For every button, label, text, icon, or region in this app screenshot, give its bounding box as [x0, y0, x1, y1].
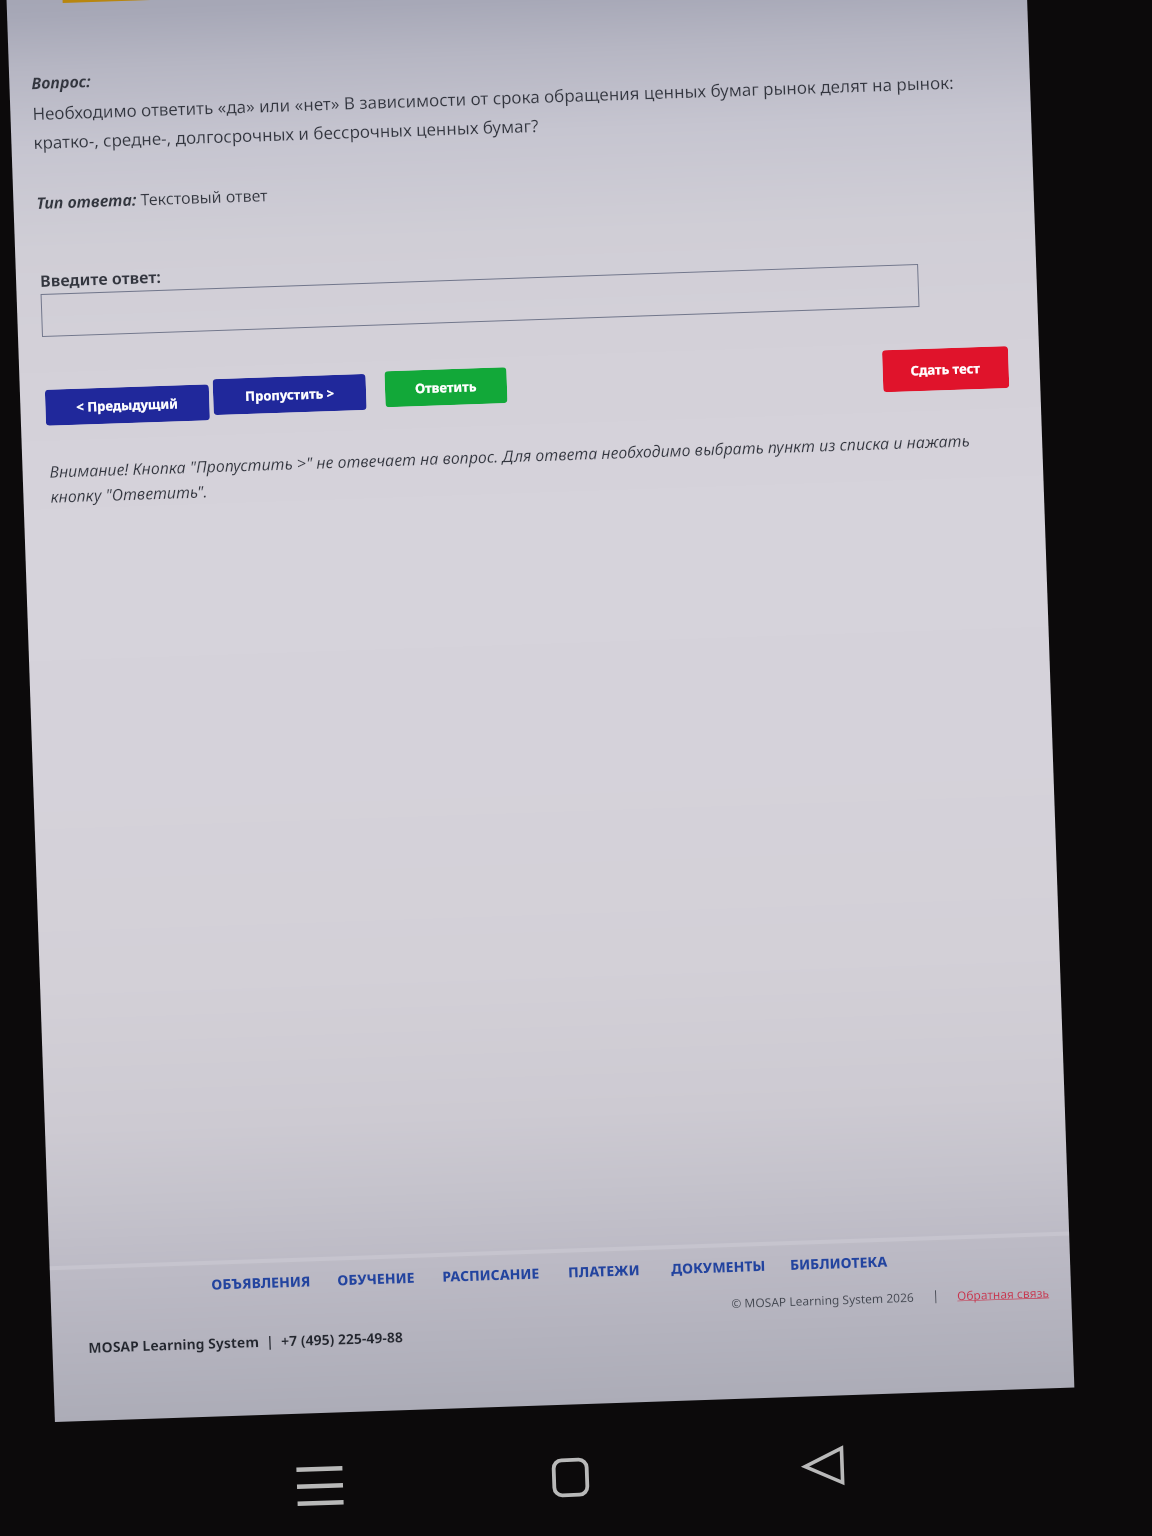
staticText: БИБЛИОТЕКА	[790, 1252, 888, 1274]
staticText: Сдать тест	[910, 359, 981, 379]
button[interactable]: ОБЪЯВЛЕНИЯ	[211, 1271, 312, 1294]
button[interactable]: Ответить	[384, 367, 508, 407]
staticText: ПЛАТЕЖИ	[568, 1260, 640, 1281]
button[interactable]: ДОКУМЕНТЫ	[671, 1256, 766, 1278]
button[interactable]	[41, 264, 920, 337]
staticText: Текстовый ответ	[136, 184, 269, 211]
staticText: |	[932, 1286, 940, 1304]
staticText: Необходимо ответить «да» или «нет» В зав…	[32, 70, 968, 154]
staticText: Пропустить >	[245, 384, 334, 405]
staticText: < Предыдущий	[76, 394, 179, 416]
staticText: Обратная связь	[957, 1284, 1049, 1303]
staticText: ДОКУМЕНТЫ	[671, 1256, 766, 1278]
button[interactable]: Обратная связь	[957, 1284, 1049, 1303]
staticText: Введите ответ:	[40, 266, 161, 292]
button[interactable]: Recent apps	[288, 1454, 352, 1518]
staticText: РАСПИСАНИЕ	[442, 1263, 540, 1286]
staticText: Ответить	[415, 377, 477, 397]
staticText: Тип ответа:	[36, 189, 137, 214]
staticText: ОБЪЯВЛЕНИЯ	[211, 1271, 312, 1294]
staticText: MOSAP Learning System | +7 (495) 225-49-…	[88, 1327, 404, 1357]
staticText: Внимание! Кнопка "Пропустить >" не отвеч…	[49, 429, 995, 507]
staticText: © MOSAP Learning System 2026	[731, 1289, 914, 1311]
staticText: ОБУЧЕНИЕ	[337, 1268, 416, 1289]
button[interactable]: Home	[538, 1445, 602, 1509]
staticText: Вопрос:	[31, 70, 92, 94]
button[interactable]: ОБУЧЕНИЕ	[337, 1268, 416, 1289]
button[interactable]: БИБЛИОТЕКА	[790, 1252, 888, 1274]
button[interactable]: < Предыдущий	[45, 384, 210, 426]
button[interactable]: Сдать тест	[882, 346, 1009, 392]
button[interactable]: РАСПИСАНИЕ	[442, 1263, 540, 1286]
button[interactable]: Пропустить >	[213, 374, 367, 415]
button[interactable]: ПЛАТЕЖИ	[568, 1260, 640, 1281]
button[interactable]: Back	[792, 1434, 856, 1498]
